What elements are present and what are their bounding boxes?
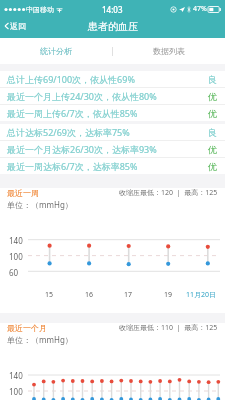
staticText: 良	[208, 127, 217, 138]
staticText: 16	[85, 290, 94, 300]
button[interactable]: 数据列表	[112, 38, 225, 64]
button[interactable]: 返回	[2, 20, 28, 32]
staticText: 收缩压最低：120 | 最高：125	[119, 188, 218, 198]
button[interactable]: 最近一个月上传24/30次，依从性80%	[0, 88, 225, 104]
staticText: 返回	[10, 21, 26, 31]
staticText: 良	[208, 74, 217, 85]
staticText: 患者的血压	[88, 20, 138, 33]
staticText: 中国移动	[26, 5, 54, 14]
button[interactable]: 统计分析	[0, 38, 112, 64]
staticText: 100	[9, 386, 23, 397]
staticText: 17	[124, 290, 133, 300]
staticText: 19	[164, 290, 173, 300]
staticText: 优	[208, 108, 217, 119]
button[interactable]: 最近一周上传6/7次，依从性85%	[0, 105, 225, 121]
button[interactable]: 总计达标52/69次，达标率75%	[0, 124, 225, 140]
staticText: 最近一周达标6/7次，达标率85%	[7, 160, 138, 172]
staticText: 14:03	[102, 4, 123, 15]
staticText: 数据列表	[153, 46, 185, 56]
button[interactable]: 最近一周达标6/7次，达标率85%	[0, 158, 225, 174]
staticText: 最近一个月	[7, 323, 47, 333]
staticText: 最近一个月上传24/30次，依从性80%	[7, 90, 157, 102]
staticText: 11月20日	[186, 290, 217, 300]
staticText: 优	[208, 161, 217, 172]
button[interactable]: 最近一个月达标26/30次，达标率93%	[0, 141, 225, 157]
staticText: 最近一周	[7, 188, 39, 198]
staticText: 60	[9, 267, 19, 278]
staticText: 47%	[193, 4, 207, 14]
staticText: 100	[9, 251, 23, 262]
staticText: 总计达标52/69次，达标率75%	[7, 126, 130, 138]
button[interactable]: 总计上传69/100次，依从性69%	[0, 71, 225, 87]
staticText: 15	[45, 290, 54, 300]
staticText: 140	[9, 235, 23, 246]
staticText: 总计上传69/100次，依从性69%	[7, 73, 135, 85]
staticText: 最近一周上传6/7次，依从性85%	[7, 107, 138, 119]
staticText: 统计分析	[40, 46, 72, 56]
staticText: 优	[208, 144, 217, 155]
staticText: 单位：（mmHg）	[7, 334, 73, 345]
staticText: 单位：（mmHg）	[7, 199, 73, 210]
staticText: 收缩压最低：110 | 最高：125	[119, 323, 218, 333]
staticText: 140	[9, 370, 23, 381]
staticText: 最近一个月达标26/30次，达标率93%	[7, 143, 157, 155]
staticText: 优	[208, 91, 217, 102]
